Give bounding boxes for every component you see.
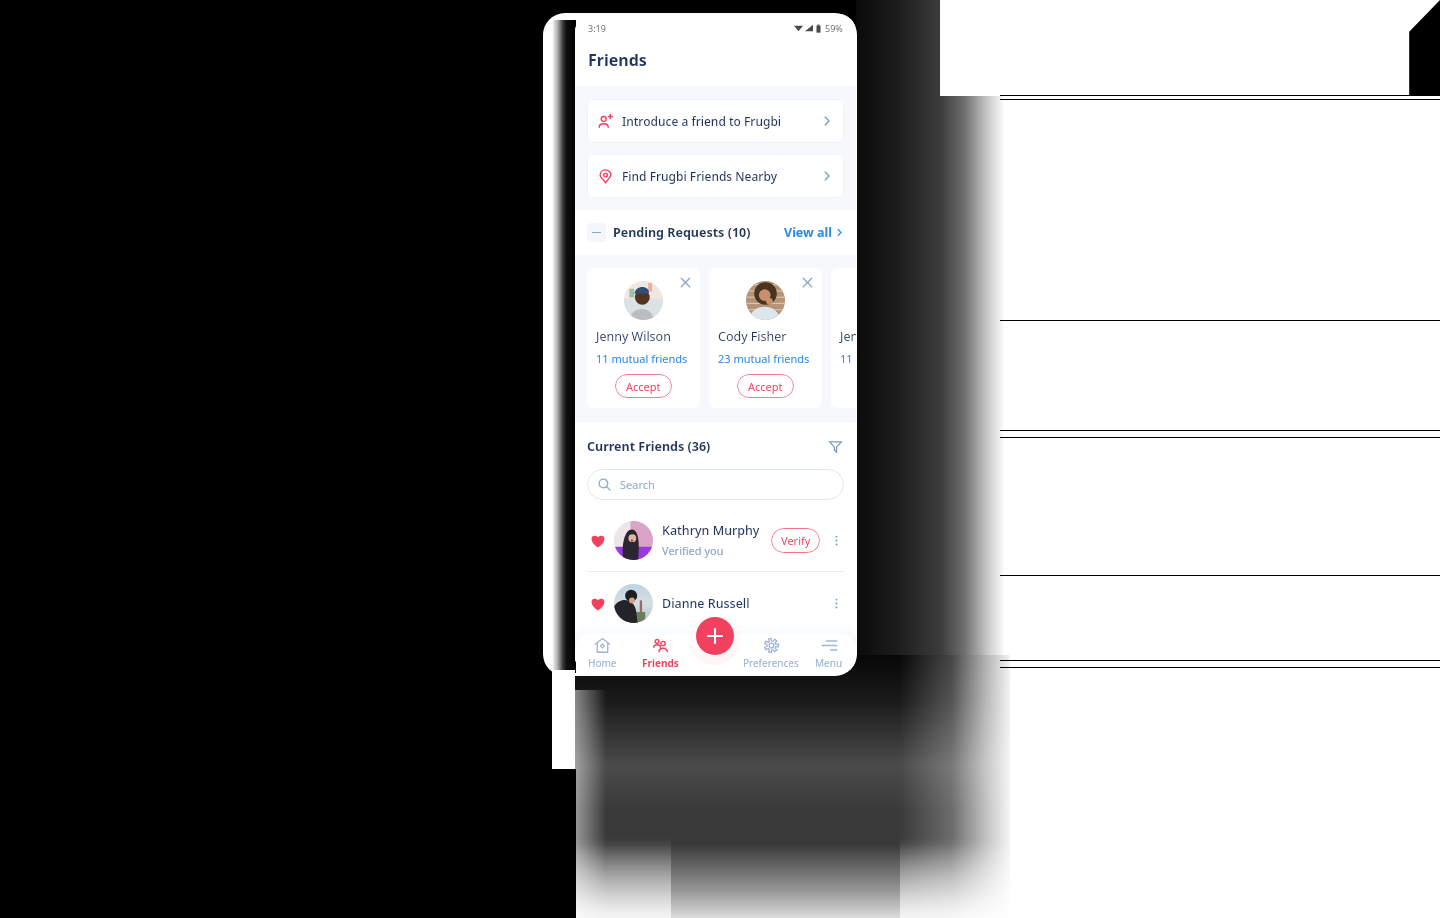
staticText: Jenny Wilson <box>840 328 856 345</box>
staticText: 11 mutual friends <box>596 351 688 366</box>
button[interactable]: Dismiss request <box>801 276 814 289</box>
staticText: Dianne Russell <box>662 595 750 612</box>
staticText: Find Frugbi Friends Nearby <box>622 168 777 184</box>
button[interactable]: Kathryn Murphy <box>575 509 856 571</box>
button[interactable]: More options <box>828 532 844 548</box>
button[interactable]: Preferences <box>743 633 799 674</box>
staticText: 59% <box>825 22 843 34</box>
staticText: Cody Fisher <box>718 328 787 345</box>
staticText: Verify <box>781 533 811 548</box>
staticText: Kathryn Murphy <box>662 522 760 539</box>
button[interactable]: Dianne Russell <box>575 572 856 634</box>
staticText: 23 mutual friends <box>718 351 810 366</box>
staticText: View all <box>784 224 832 241</box>
staticText: Accept <box>748 379 783 394</box>
staticText: 3:19 <box>588 22 606 34</box>
button[interactable]: Friends <box>632 633 688 674</box>
button[interactable]: View all <box>784 224 844 241</box>
staticText: Current Friends (36) <box>587 438 711 455</box>
button[interactable]: Dismiss request <box>831 268 856 408</box>
button[interactable]: Verify <box>771 528 820 553</box>
staticText: Friends <box>642 656 679 670</box>
button[interactable]: Dismiss request <box>709 268 822 408</box>
button[interactable]: Accept <box>737 374 794 398</box>
button[interactable]: Home <box>575 633 630 674</box>
button[interactable]: Find Frugbi Friends Nearby <box>587 154 844 198</box>
button[interactable]: Collapse section <box>587 223 606 242</box>
button[interactable]: Filter <box>826 437 844 455</box>
staticText: Accept <box>626 379 661 394</box>
button[interactable]: Search <box>587 469 844 500</box>
staticText: Search <box>620 477 655 492</box>
button[interactable]: Add friend <box>696 617 734 655</box>
staticText: Introduce a friend to Frugbi <box>622 113 782 129</box>
button[interactable]: More options <box>828 595 844 611</box>
staticText: Menu <box>815 656 843 670</box>
staticText: Jenny Wilson <box>596 328 671 345</box>
staticText: Pending Requests (10) <box>613 224 751 241</box>
button[interactable]: Dismiss request <box>587 268 700 408</box>
staticText: 11 mutual friends <box>840 351 856 366</box>
staticText: Home <box>588 656 617 670</box>
button[interactable]: Menu <box>801 633 856 674</box>
button[interactable]: Accept <box>615 374 672 398</box>
staticText: Preferences <box>743 656 799 670</box>
staticText: Verified you <box>662 543 724 558</box>
button[interactable]: Dismiss request <box>679 276 692 289</box>
button[interactable]: Introduce a friend to Frugbi <box>587 99 844 143</box>
staticText: Friends <box>588 49 647 71</box>
